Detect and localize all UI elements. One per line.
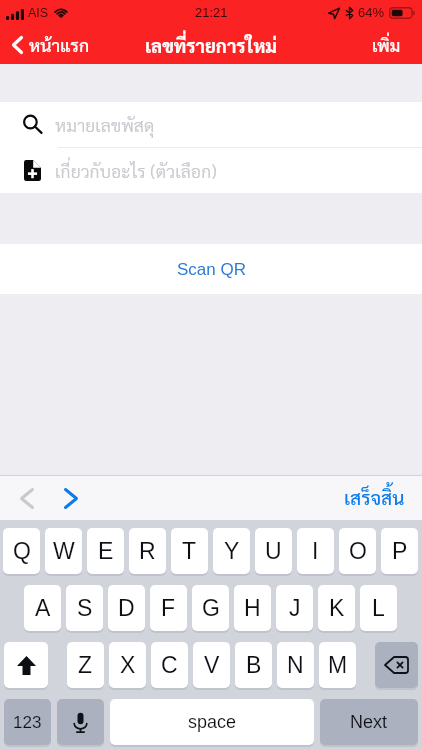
button[interactable]: เสร็จสิ้น xyxy=(330,477,422,518)
button[interactable]: หน้าแรก xyxy=(0,29,98,60)
staticText: 123 xyxy=(13,713,42,732)
staticText: J xyxy=(289,595,301,621)
button[interactable]: S xyxy=(66,585,103,631)
button[interactable]: T xyxy=(171,528,208,574)
button[interactable]: Previous field xyxy=(5,476,49,520)
staticText: Next xyxy=(350,712,388,732)
button[interactable]: P xyxy=(381,528,418,574)
staticText: D xyxy=(118,595,135,621)
button[interactable]: เกี่ยวกับอะไร (ตัวเลือก) xyxy=(0,148,422,193)
staticText: space xyxy=(188,712,237,732)
staticText: C xyxy=(161,652,178,678)
button[interactable]: Backspace xyxy=(375,642,418,688)
staticText: L xyxy=(372,595,385,621)
staticText: I xyxy=(312,538,319,564)
button[interactable]: C xyxy=(151,642,188,688)
staticText: K xyxy=(329,595,345,621)
button[interactable]: Next field xyxy=(49,476,93,520)
button[interactable]: Y xyxy=(213,528,250,574)
button[interactable]: K xyxy=(318,585,355,631)
staticText: AIS xyxy=(28,6,49,20)
button[interactable]: Z xyxy=(67,642,104,688)
staticText: N xyxy=(287,652,304,678)
staticText: เกี่ยวกับอะไร (ตัวเลือก) xyxy=(55,159,217,182)
staticText: Z xyxy=(78,652,93,678)
button[interactable]: N xyxy=(277,642,314,688)
staticText: T xyxy=(182,538,197,564)
button[interactable]: L xyxy=(360,585,397,631)
button[interactable]: Dictate xyxy=(57,699,104,745)
staticText: F xyxy=(161,595,176,621)
button[interactable]: X xyxy=(109,642,146,688)
staticText: Y xyxy=(224,538,240,564)
button[interactable]: R xyxy=(129,528,166,574)
staticText: M xyxy=(328,652,348,678)
staticText: หน้าแรก xyxy=(29,33,90,56)
staticText: G xyxy=(202,595,220,621)
button[interactable]: V xyxy=(193,642,230,688)
staticText: O xyxy=(349,538,367,564)
button[interactable]: Scan QR xyxy=(0,244,422,294)
button[interactable]: Q xyxy=(3,528,40,574)
staticText: B xyxy=(246,652,262,678)
button[interactable]: W xyxy=(45,528,82,574)
staticText: Scan QR xyxy=(177,260,246,279)
staticText: หมายเลขพัสดุ xyxy=(55,113,155,136)
staticText: X xyxy=(120,652,136,678)
button[interactable]: J xyxy=(276,585,313,631)
button[interactable]: D xyxy=(108,585,145,631)
staticText: H xyxy=(244,595,261,621)
staticText: P xyxy=(392,538,408,564)
staticText: เลขที่รายการใหม่ xyxy=(145,33,278,57)
button[interactable]: O xyxy=(339,528,376,574)
staticText: E xyxy=(98,538,114,564)
button[interactable]: H xyxy=(234,585,271,631)
button[interactable]: เพิ่ม xyxy=(356,28,422,62)
staticText: 21:21 xyxy=(195,5,228,20)
staticText: 64% xyxy=(358,5,385,20)
staticText: W xyxy=(53,538,75,564)
button[interactable]: B xyxy=(235,642,272,688)
button[interactable]: A xyxy=(24,585,61,631)
staticText: R xyxy=(139,538,156,564)
staticText: Q xyxy=(13,538,31,564)
staticText: U xyxy=(265,538,282,564)
button[interactable]: หมายเลขพัสดุ xyxy=(0,102,422,147)
button[interactable]: M xyxy=(319,642,356,688)
staticText: A xyxy=(35,595,51,621)
staticText: V xyxy=(204,652,220,678)
button[interactable]: Shift xyxy=(4,642,48,688)
button[interactable]: U xyxy=(255,528,292,574)
button[interactable]: space xyxy=(110,699,314,745)
staticText: S xyxy=(77,595,93,621)
button[interactable]: F xyxy=(150,585,187,631)
button[interactable]: E xyxy=(87,528,124,574)
button[interactable]: 123 xyxy=(4,699,51,745)
button[interactable]: I xyxy=(297,528,334,574)
button[interactable]: Next xyxy=(320,699,418,745)
button[interactable]: G xyxy=(192,585,229,631)
